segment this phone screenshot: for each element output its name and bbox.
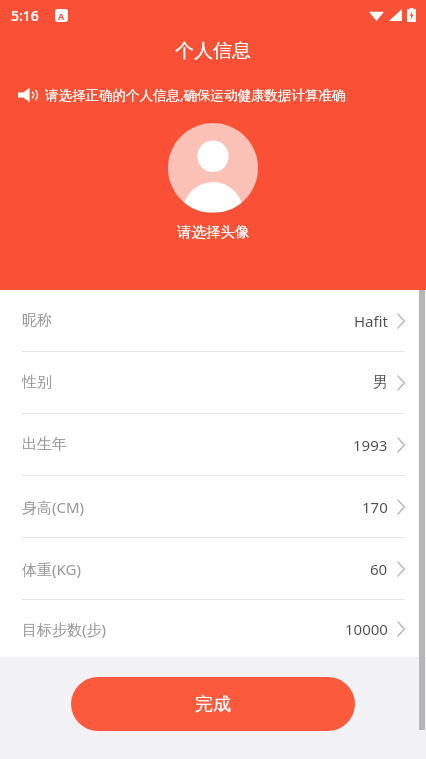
staticText: 请选择头像	[177, 223, 250, 241]
button[interactable]: 性别	[0, 352, 426, 414]
staticText: 60	[370, 559, 388, 579]
staticText: 出生年	[22, 435, 67, 454]
button[interactable]: 选择头像	[168, 123, 258, 213]
button[interactable]: 身高(CM)	[0, 476, 426, 538]
staticText: 1993	[353, 435, 388, 455]
staticText: 5:16	[11, 6, 39, 25]
staticText: 体重(KG)	[22, 559, 81, 579]
staticText: A	[58, 10, 65, 22]
button[interactable]: 体重(KG)	[0, 538, 426, 600]
staticText: 性别	[22, 373, 52, 392]
staticText: 昵称	[22, 311, 52, 330]
staticText: 男	[373, 373, 388, 392]
staticText: 170	[362, 497, 388, 517]
staticText: 完成	[195, 693, 231, 716]
button[interactable]: 完成	[71, 677, 355, 731]
staticText: 身高(CM)	[22, 497, 85, 517]
staticText: 个人信息	[175, 39, 251, 63]
staticText: 请选择正确的个人信息,确保运动健康数据计算准确	[45, 86, 346, 104]
button[interactable]: 出生年	[0, 414, 426, 476]
button[interactable]: 目标步数(步)	[0, 600, 426, 657]
button[interactable]: 昵称	[0, 290, 426, 352]
staticText: 10000	[345, 619, 388, 639]
staticText: 目标步数(步)	[22, 619, 107, 639]
staticText: Hafit	[354, 311, 388, 331]
